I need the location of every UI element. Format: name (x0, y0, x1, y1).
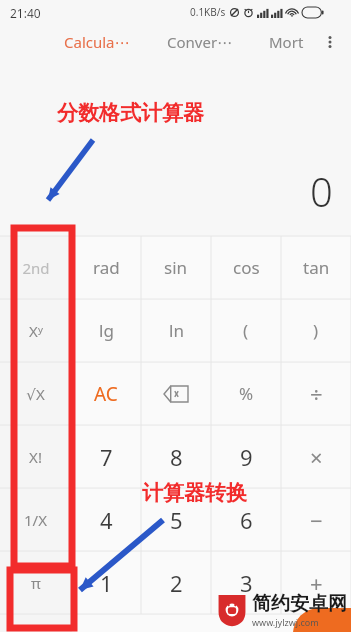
staticText: 4 (100, 505, 113, 535)
staticText: 8 (170, 442, 183, 472)
button[interactable]: 8 (141, 425, 211, 488)
button[interactable]: sin (141, 236, 211, 299)
staticText: 2nd (22, 258, 50, 278)
button[interactable]: 3 (211, 551, 281, 614)
staticText: Calcula⋯ (64, 32, 130, 52)
button[interactable]: Fraction format (0, 614, 71, 632)
staticText: ) (313, 319, 319, 342)
staticText: sin (164, 256, 188, 279)
button[interactable]: . (211, 614, 281, 632)
staticText: 计算器转换 (142, 480, 247, 506)
button[interactable]: ÷ (281, 362, 351, 425)
staticText: × (310, 442, 323, 472)
button[interactable]: tan (281, 236, 351, 299)
button[interactable]: Delete (141, 362, 211, 425)
staticText: 2 (170, 568, 183, 598)
button[interactable]: More options (316, 28, 344, 56)
button[interactable]: e (71, 614, 141, 632)
button[interactable]: 5 (141, 488, 211, 551)
button[interactable]: ) (281, 299, 351, 362)
staticText: 3 (240, 568, 253, 598)
staticText: 分数格式计算器 (57, 100, 204, 126)
button[interactable]: ( (211, 299, 281, 362)
button[interactable]: + (281, 551, 351, 614)
staticText: Conver⋯ (167, 32, 233, 52)
button[interactable]: 4 (71, 488, 141, 551)
staticText: 0.1KB/s (190, 5, 226, 19)
button[interactable]: lg (71, 299, 141, 362)
staticText: 6 (240, 505, 253, 535)
staticText: Xʸ (29, 321, 43, 341)
staticText: AC (94, 381, 118, 407)
button[interactable]: × (281, 425, 351, 488)
staticText: % (239, 382, 254, 405)
staticText: X! (29, 447, 42, 467)
staticText: 7 (100, 442, 113, 472)
button[interactable]: AC (71, 362, 141, 425)
button[interactable]: = (293, 608, 351, 632)
button[interactable]: 6 (211, 488, 281, 551)
button[interactable]: cos (211, 236, 281, 299)
staticText: 5 (170, 505, 183, 535)
button[interactable]: X! (0, 425, 71, 488)
button[interactable]: 2nd (0, 236, 71, 299)
staticText: Mort (269, 32, 304, 52)
staticText: ln (169, 319, 184, 342)
staticText: + (310, 568, 323, 598)
button[interactable]: % (211, 362, 281, 425)
button[interactable]: Conver⋯ (167, 32, 233, 52)
button[interactable]: ln (141, 299, 211, 362)
button[interactable]: Xʸ (0, 299, 71, 362)
staticText: 21:40 (10, 5, 41, 21)
button[interactable]: rad (71, 236, 141, 299)
button[interactable]: √X (0, 362, 71, 425)
staticText: rad (93, 256, 120, 279)
staticText: ( (243, 319, 249, 342)
staticText: π (31, 573, 41, 593)
staticText: 1 (100, 568, 113, 598)
staticText: 0 (310, 164, 333, 218)
button[interactable]: 1 (71, 551, 141, 614)
button[interactable]: 9 (211, 425, 281, 488)
staticText: cos (233, 256, 260, 279)
button[interactable]: Calcula⋯ (64, 32, 130, 52)
staticText: 9 (240, 442, 253, 472)
button[interactable]: Mort (269, 32, 304, 52)
staticText: ÷ (310, 379, 323, 409)
staticText: 1/X (24, 510, 47, 530)
staticText: − (310, 505, 323, 535)
staticText: √X (26, 384, 45, 404)
button[interactable]: 2 (141, 551, 211, 614)
staticText: www.jylzwj.com (252, 616, 319, 628)
button[interactable]: 7 (71, 425, 141, 488)
staticText: lg (99, 319, 114, 342)
button[interactable]: π (0, 551, 71, 614)
button[interactable]: 1/X (0, 488, 71, 551)
staticText: tan (303, 256, 330, 279)
staticText: 简约安卓网 (252, 592, 347, 616)
button[interactable]: − (281, 488, 351, 551)
